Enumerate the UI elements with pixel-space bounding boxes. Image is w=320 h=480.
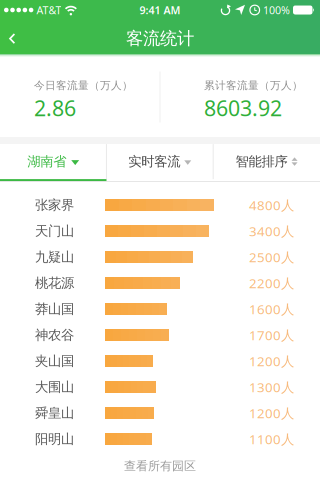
staticText: 4800人 xyxy=(249,196,294,214)
button[interactable]: 张家界 xyxy=(0,192,320,218)
button[interactable]: 智能排序 xyxy=(214,144,320,179)
staticText: 1200人 xyxy=(249,404,294,422)
button[interactable]: 莽山国 xyxy=(0,296,320,322)
staticText: 2.86 xyxy=(34,94,76,122)
button[interactable]: Back xyxy=(0,23,16,51)
button[interactable]: 九疑山 xyxy=(0,244,320,270)
staticText: 2200人 xyxy=(249,274,294,292)
button[interactable]: 阳明山 xyxy=(0,426,320,452)
button[interactable]: 天门山 xyxy=(0,218,320,244)
button[interactable]: 查看所有园区 xyxy=(0,452,320,480)
button[interactable]: 舜皇山 xyxy=(0,400,320,426)
staticText: 累计客流量（万人） xyxy=(204,79,303,92)
staticText: 莽山国 xyxy=(35,301,74,317)
staticText: 天门山 xyxy=(35,223,74,239)
staticText: 舜皇山 xyxy=(35,405,74,421)
staticText: 1600人 xyxy=(249,300,294,318)
staticText: 2500人 xyxy=(249,248,294,266)
staticText: 智能排序 xyxy=(236,153,288,170)
button[interactable]: 夹山国 xyxy=(0,348,320,374)
button[interactable]: 桃花源 xyxy=(0,270,320,296)
staticText: 1200人 xyxy=(249,352,294,370)
staticText: 100% xyxy=(263,3,290,17)
staticText: 大围山 xyxy=(35,379,74,395)
staticText: 阳明山 xyxy=(35,431,74,447)
staticText: 9:41 AM xyxy=(139,3,180,17)
staticText: 神农谷 xyxy=(35,327,74,343)
staticText: 1300人 xyxy=(249,378,294,396)
staticText: 1700人 xyxy=(249,326,294,344)
button[interactable]: 湖南省 xyxy=(0,144,106,179)
staticText: 8603.92 xyxy=(204,94,282,122)
button[interactable]: 实时客流 xyxy=(107,144,213,179)
staticText: 九疑山 xyxy=(35,249,74,265)
staticText: 客流统计 xyxy=(126,28,194,49)
button[interactable]: 大围山 xyxy=(0,374,320,400)
staticText: 夹山国 xyxy=(35,353,74,369)
staticText: 3400人 xyxy=(249,222,294,240)
staticText: 湖南省 xyxy=(27,153,66,170)
staticText: 实时客流 xyxy=(128,153,180,170)
staticText: 今日客流量（万人） xyxy=(34,79,133,92)
staticText: 张家界 xyxy=(35,197,74,213)
staticText: 桃花源 xyxy=(35,275,74,291)
staticText: 1100人 xyxy=(249,430,294,448)
staticText: 查看所有园区 xyxy=(124,459,196,473)
button[interactable]: 神农谷 xyxy=(0,322,320,348)
staticText: AT&T xyxy=(36,3,61,17)
